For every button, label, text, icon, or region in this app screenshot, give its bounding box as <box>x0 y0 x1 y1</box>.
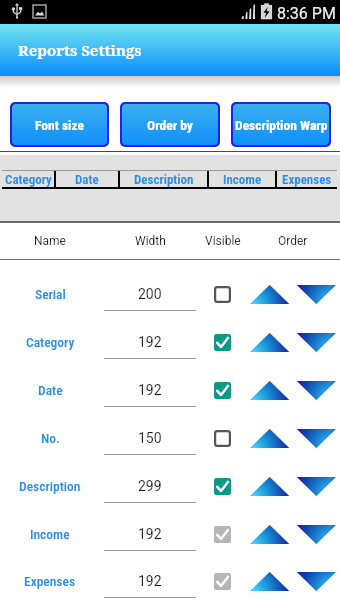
staticText: No. <box>41 430 60 446</box>
staticText: Date <box>38 382 63 398</box>
button[interactable]: Move down <box>297 572 336 591</box>
button[interactable]: Move up <box>250 429 289 448</box>
staticText: Expenses <box>24 573 76 589</box>
button[interactable]: Move up <box>250 381 289 400</box>
staticText: Category <box>5 172 52 187</box>
staticText: Income <box>30 526 70 542</box>
staticText: Serial <box>35 286 66 302</box>
staticText: 200 <box>138 286 162 302</box>
button[interactable]: Description <box>121 171 206 187</box>
button[interactable]: Move down <box>297 429 336 448</box>
button[interactable]: Toggle visible <box>214 526 231 543</box>
button[interactable]: Date <box>57 171 117 187</box>
staticText: Expenses <box>282 172 332 187</box>
staticText: Width <box>135 234 166 248</box>
staticText: Income <box>223 172 262 187</box>
staticText: Font size <box>35 117 84 133</box>
staticText: Date <box>75 172 99 187</box>
button[interactable]: Move down <box>297 381 336 400</box>
button[interactable]: Move down <box>297 477 336 496</box>
staticText: Description <box>134 172 194 187</box>
button[interactable]: Toggle visible <box>214 430 231 447</box>
button[interactable]: Toggle visible <box>214 334 231 351</box>
button[interactable]: Toggle visible <box>214 382 231 399</box>
button[interactable]: Order by <box>122 104 218 145</box>
button[interactable]: Move up <box>250 333 289 352</box>
staticText: Reports Settings <box>18 40 142 60</box>
button[interactable]: Font size <box>12 104 107 145</box>
button[interactable]: Description Warp <box>233 104 329 145</box>
button[interactable]: Move down <box>297 525 336 544</box>
button[interactable]: Move up <box>250 477 289 496</box>
staticText: 192 <box>138 573 162 589</box>
staticText: 192 <box>138 334 162 350</box>
button[interactable]: Move up <box>250 525 289 544</box>
button[interactable]: Move up <box>250 572 289 591</box>
button[interactable]: Move down <box>297 285 336 304</box>
staticText: Order <box>278 234 308 248</box>
button[interactable]: Toggle visible <box>214 286 231 303</box>
staticText: 299 <box>138 478 162 494</box>
button[interactable]: Toggle visible <box>214 478 231 495</box>
staticText: 150 <box>138 430 162 446</box>
staticText: Description Warp <box>235 117 328 133</box>
staticText: Order by <box>147 117 193 133</box>
staticText: 8:36 PM <box>277 4 336 23</box>
staticText: Name <box>34 234 66 248</box>
button[interactable]: Move up <box>250 285 289 304</box>
staticText: Description <box>19 478 81 494</box>
staticText: Visible <box>205 234 241 248</box>
button[interactable]: Move down <box>297 333 336 352</box>
button[interactable]: Toggle visible <box>214 573 231 590</box>
button[interactable]: Category <box>3 171 53 187</box>
button[interactable]: Income <box>210 171 274 187</box>
staticText: 192 <box>138 526 162 542</box>
staticText: 192 <box>138 382 162 398</box>
button[interactable]: Expenses <box>278 171 336 187</box>
staticText: Category <box>26 334 75 350</box>
